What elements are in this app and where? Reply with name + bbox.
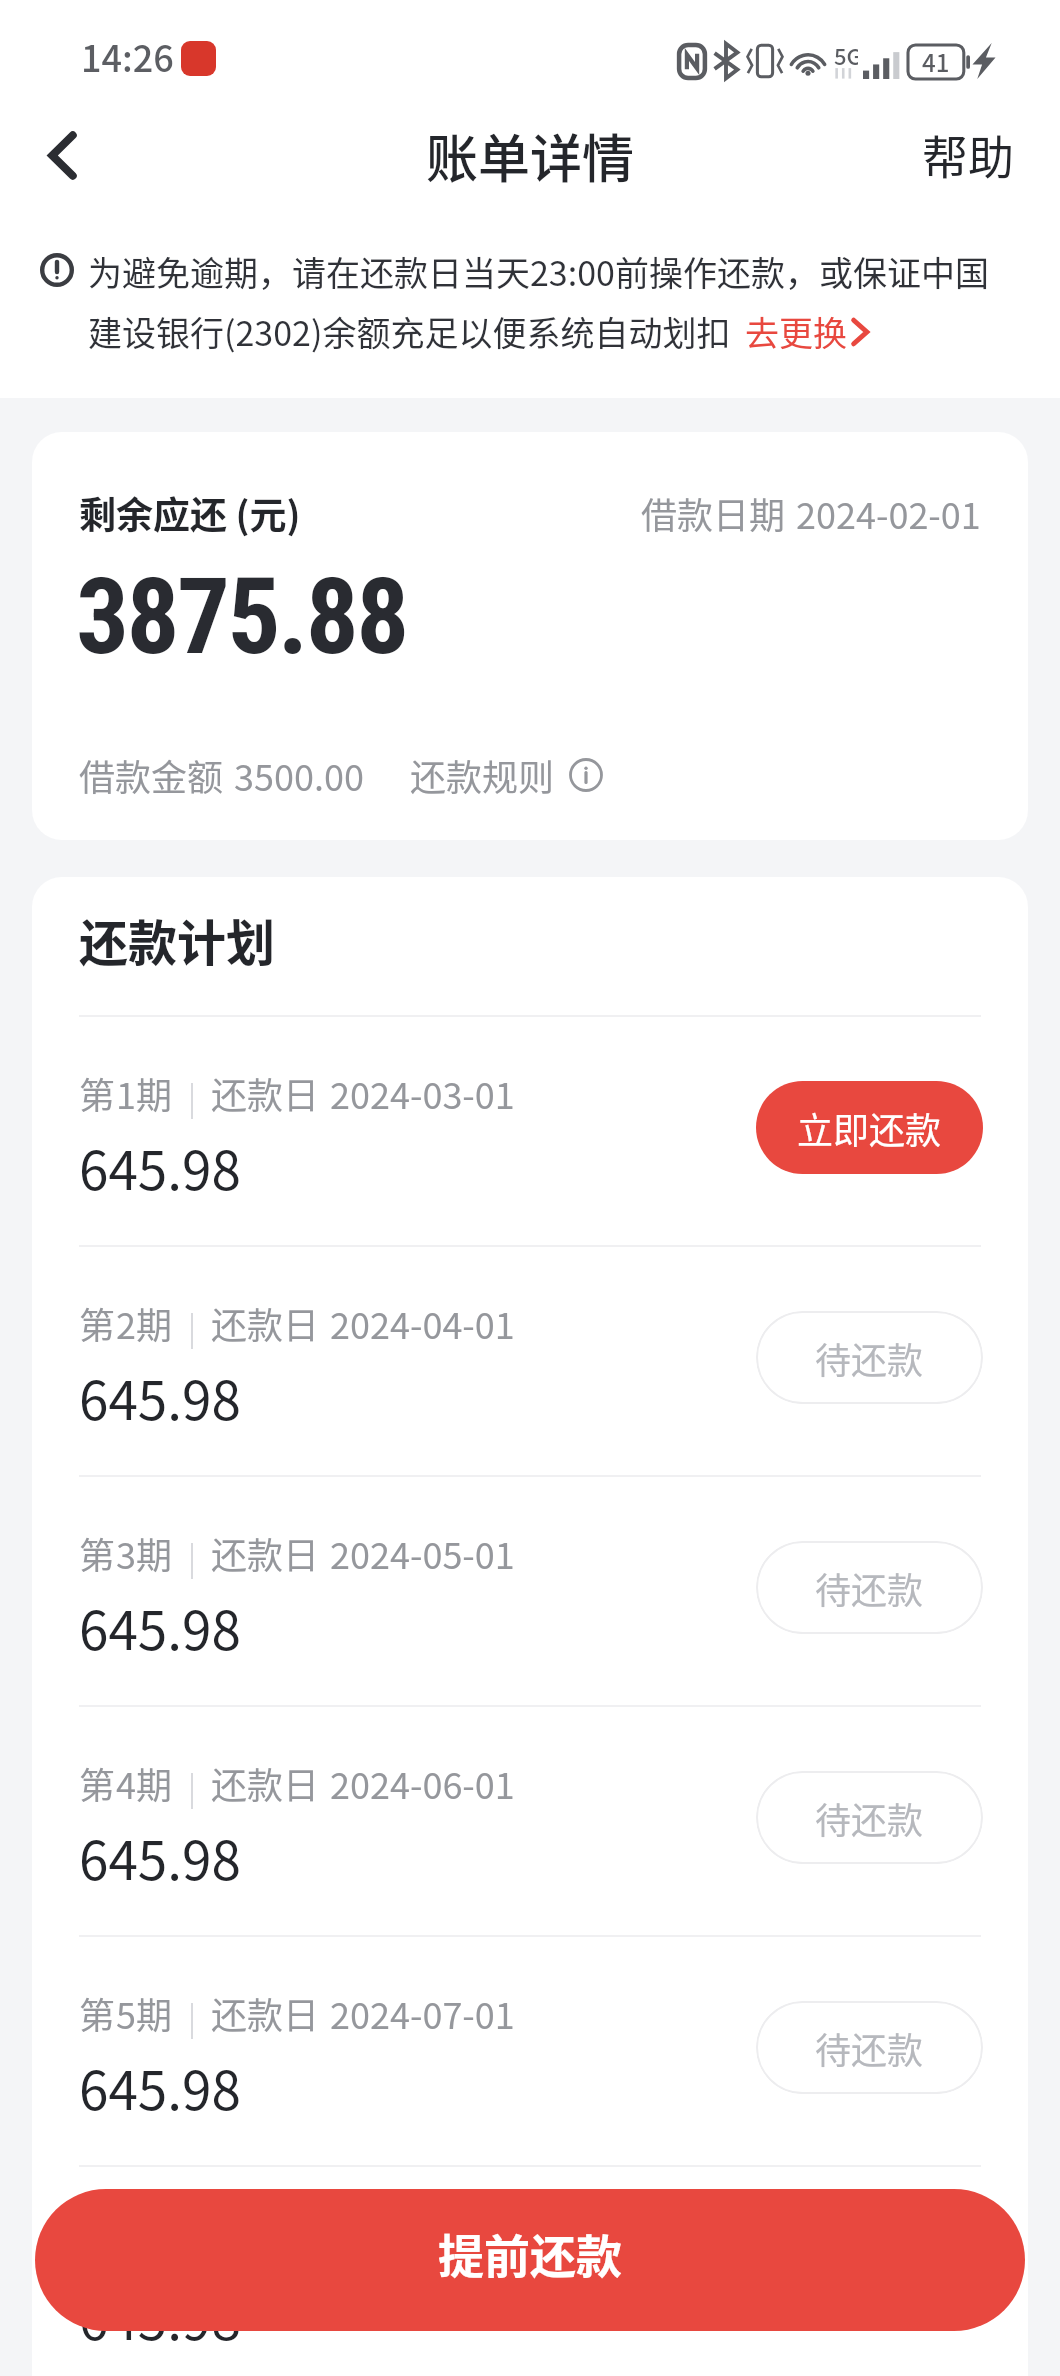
button[interactable]: 待还款 xyxy=(756,2001,983,2094)
staticText: 645.98 xyxy=(79,1819,241,1896)
button[interactable]: 提前还款 xyxy=(35,2189,1025,2331)
staticText: 期 xyxy=(136,1987,173,2039)
staticText: 期 xyxy=(136,1067,173,1119)
staticText: 期 xyxy=(136,1527,173,1579)
staticText: 645.98 xyxy=(79,2279,241,2356)
staticText: 第 xyxy=(79,1067,116,1119)
staticText: 第 xyxy=(79,1297,116,1349)
staticText: 借款金额 xyxy=(79,749,224,801)
staticText: 2024-02-01 xyxy=(796,487,981,539)
staticText: 还款日 xyxy=(211,1757,320,1809)
staticText: 645.98 xyxy=(79,2049,241,2126)
staticText: 第 xyxy=(79,1757,116,1809)
staticText: 还款日 xyxy=(211,1527,320,1579)
staticText: 借款日期 xyxy=(641,487,786,539)
staticText: 期 xyxy=(136,1757,173,1809)
staticText: 待还款 xyxy=(815,1562,924,1614)
staticText: 5 xyxy=(116,1987,136,2039)
staticText: 645.98 xyxy=(79,1589,241,1666)
staticText: 建设银行(2302)余额充足以便系统自动划扣 xyxy=(88,307,731,356)
staticText: 2024-06-01 xyxy=(330,1757,515,1809)
staticText: 3500.00 xyxy=(234,749,364,801)
staticText: 还款规则 xyxy=(410,749,555,801)
staticText: 待还款 xyxy=(815,2022,924,2074)
staticText: 41 xyxy=(922,44,950,79)
staticText: 期 xyxy=(136,1297,173,1349)
button[interactable]: 待还款 xyxy=(756,1311,983,1404)
staticText: 3 xyxy=(116,1527,136,1579)
staticText: 还款日 xyxy=(211,1297,320,1349)
button[interactable]: 帮助 xyxy=(882,100,1060,220)
staticText: 645.98 xyxy=(79,1129,241,1206)
staticText: 第 xyxy=(79,1527,116,1579)
staticText: 剩余应还 (元) xyxy=(79,486,301,540)
staticText: 3875.88 xyxy=(76,556,407,679)
staticText: 账单详情 xyxy=(426,118,635,193)
button[interactable]: 待还款 xyxy=(756,1541,983,1634)
staticText: 2024-03-01 xyxy=(330,1067,515,1119)
button[interactable]: 去更换 xyxy=(745,307,869,356)
staticText: 帮助 xyxy=(922,121,1014,188)
staticText: 14:26 xyxy=(81,30,174,82)
staticText: 2 xyxy=(116,1297,136,1349)
staticText: 2024-08-01 xyxy=(330,2217,515,2269)
staticText: 第 xyxy=(79,1987,116,2039)
staticText: 还款日 xyxy=(211,1067,320,1119)
button[interactable]: 还款规则 xyxy=(410,749,603,801)
staticText: 4 xyxy=(116,1757,136,1809)
staticText: 2024-05-01 xyxy=(330,1527,515,1579)
staticText: 去更换 xyxy=(745,307,847,356)
staticText: 5G xyxy=(834,39,858,71)
staticText: 提前还款 xyxy=(438,2220,622,2287)
staticText: 1 xyxy=(116,1067,136,1119)
staticText: 立即还款 xyxy=(797,1102,942,1154)
button[interactable]: 待还款 xyxy=(756,1771,983,1864)
staticText: 645.98 xyxy=(79,1359,241,1436)
staticText: 为避免逾期，请在还款日当天23:00前操作还款，或保证中国 xyxy=(88,247,989,296)
staticText: 2024-04-01 xyxy=(330,1297,515,1349)
staticText: 2024-07-01 xyxy=(330,1987,515,2039)
button[interactable]: 立即还款 xyxy=(756,1081,983,1174)
staticText: 待还款 xyxy=(815,1792,924,1844)
staticText: 还款计划 xyxy=(79,904,276,975)
staticText: 待还款 xyxy=(815,1332,924,1384)
button[interactable]: Back xyxy=(0,100,124,220)
staticText: 还款日 xyxy=(211,1987,320,2039)
